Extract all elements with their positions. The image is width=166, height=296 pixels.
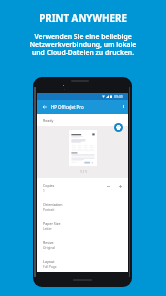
staticText: Copies — [43, 183, 55, 188]
staticText: Portrait — [43, 208, 55, 212]
staticText: Original — [43, 246, 55, 250]
button[interactable]: Orientation — [37, 197, 128, 216]
staticText: 1 / 1 — [80, 169, 87, 174]
button[interactable]: Paper Size — [37, 216, 128, 235]
staticText: Resize — [43, 240, 54, 245]
staticText: Full Page — [43, 265, 57, 269]
staticText: Orientation — [43, 202, 63, 207]
staticText: PRINT ANYWHERE — [0, 12, 166, 25]
button[interactable]: Increase copies — [116, 182, 124, 190]
button[interactable]: More options — [119, 102, 128, 111]
other: Back — [43, 105, 47, 109]
staticText: HP OfficeJet Pro — [51, 104, 84, 110]
staticText: Letter — [43, 227, 52, 231]
button[interactable]: Layout — [37, 254, 128, 272]
staticText: Paper Size — [43, 221, 61, 226]
staticText: Layout — [43, 259, 55, 264]
button[interactable]: Resize — [37, 235, 128, 254]
button[interactable]: Decrease copies — [104, 182, 112, 190]
staticText: 09:30 — [114, 94, 123, 99]
button[interactable]: Print — [114, 123, 123, 132]
button[interactable]: Copies — [37, 178, 128, 197]
staticText: Verwenden Sie eine beliebige Netzwerkver… — [0, 32, 166, 57]
button[interactable]: Back — [37, 100, 128, 114]
staticText: 1 — [43, 189, 45, 193]
staticText: Ready — [43, 118, 54, 123]
